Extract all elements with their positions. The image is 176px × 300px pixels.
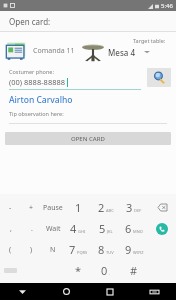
staticText: Mesa 4 [108, 47, 136, 58]
staticText: 1 [75, 200, 82, 215]
staticText: 8 [98, 242, 105, 257]
button[interactable]: OPEN CARD [5, 132, 171, 145]
other: Delete [148, 197, 176, 218]
staticText: 0 [101, 263, 108, 278]
staticText: DEF [134, 208, 142, 213]
staticText: OPEN CARD [71, 135, 105, 143]
staticText: ( [9, 245, 12, 255]
button[interactable]: ) [21, 239, 42, 260]
button[interactable]: (00) 8888-88888 [9, 77, 141, 87]
button[interactable]: 7 [64, 239, 92, 260]
button[interactable]: - [0, 197, 21, 218]
button[interactable]: + [21, 197, 42, 218]
button[interactable]: # [120, 260, 148, 281]
staticText: Pause [43, 203, 63, 213]
button[interactable]: 1 [64, 197, 92, 218]
staticText: 2 [98, 200, 105, 215]
button[interactable]: Wait [42, 218, 64, 239]
staticText: Airton Carvalho [9, 94, 73, 106]
button[interactable]: 5 [92, 218, 120, 239]
button[interactable]: Search customer [147, 68, 171, 87]
staticText: 7 [69, 242, 76, 257]
button[interactable]: Mesa 4 [80, 41, 150, 63]
staticText: 9 [125, 242, 132, 257]
staticText: Tip observation here: [9, 110, 64, 117]
staticText: MNO [133, 229, 143, 234]
button[interactable]: , [0, 218, 21, 239]
staticText: Comanda 11 [33, 46, 75, 56]
button[interactable]: ( [0, 239, 21, 260]
staticText: ) [30, 245, 33, 255]
button[interactable]: N [42, 239, 64, 260]
staticText: 4 [70, 221, 77, 236]
staticText: * [75, 263, 82, 278]
staticText: Costumer phone: [9, 68, 54, 75]
staticText: Target table: [133, 37, 166, 44]
staticText: PQRS [77, 250, 88, 255]
button[interactable]: 9 [120, 239, 148, 260]
button[interactable]: 3 [120, 197, 148, 218]
button[interactable]: Space [0, 260, 21, 281]
staticText: 3 [126, 200, 133, 215]
staticText: . [31, 224, 33, 234]
other: Call [148, 218, 176, 239]
button[interactable]: 8 [92, 239, 120, 260]
staticText: + [29, 203, 34, 213]
staticText: 6 [125, 221, 132, 236]
staticText: # [130, 263, 138, 278]
staticText: N [50, 245, 56, 255]
staticText: WXYZ [133, 250, 144, 255]
button[interactable]: Hide keyboard [132, 283, 176, 300]
button[interactable]: 2 [92, 197, 120, 218]
staticText: . [109, 271, 111, 276]
staticText: , [10, 224, 12, 234]
staticText: 5 [99, 221, 106, 236]
button[interactable]: Comanda 11 [0, 36, 80, 66]
button[interactable]: 4 [64, 218, 92, 239]
button[interactable]: Pause [42, 197, 64, 218]
button[interactable]: Delete [148, 197, 176, 218]
button[interactable]: Recent apps [88, 283, 132, 300]
staticText: ABC [106, 208, 114, 213]
staticText: Open card: [9, 16, 51, 27]
staticText: 5:46 [161, 2, 173, 10]
button[interactable]: 6 [120, 218, 148, 239]
staticText: JKL [107, 229, 113, 234]
staticText: - [9, 203, 12, 213]
staticText: GHI [78, 229, 86, 234]
staticText: Wait [46, 224, 61, 234]
button[interactable]: Back [0, 283, 44, 300]
staticText: (00) 8888-88888 [9, 77, 66, 87]
button[interactable]: Home [44, 283, 88, 300]
button[interactable]: * [64, 260, 92, 281]
button[interactable]: 0 [92, 260, 120, 281]
button[interactable]: Call [148, 218, 176, 239]
staticText: TUV [106, 250, 114, 255]
